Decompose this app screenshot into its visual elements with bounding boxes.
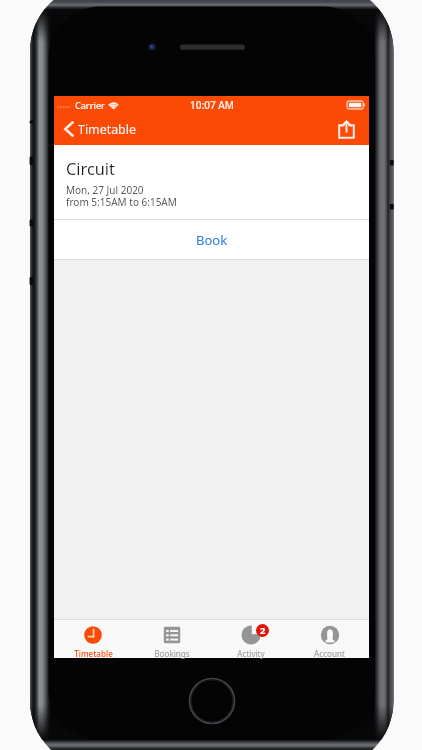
staticText: Account	[314, 648, 345, 659]
staticText: Circuit	[66, 158, 115, 180]
button[interactable]: Share	[330, 114, 362, 144]
staticText: Book	[196, 231, 228, 249]
staticText: Activity	[237, 648, 265, 659]
staticText: Mon, 27 Jul 2020 from 5:15AM to 6:15AM	[66, 183, 177, 209]
button[interactable]: Timetable	[54, 620, 132, 658]
staticText: Carrier	[75, 99, 105, 111]
button[interactable]: Timetable	[58, 115, 144, 143]
button[interactable]: 2	[211, 620, 290, 658]
staticText: 10:07 AM	[190, 98, 234, 112]
button[interactable]: Account	[290, 620, 369, 658]
staticText: Bookings	[154, 648, 190, 659]
staticText: 2	[260, 624, 266, 637]
button[interactable]: Book	[54, 220, 369, 259]
staticText: Timetable	[74, 648, 113, 659]
button[interactable]: Bookings	[132, 620, 211, 658]
staticText: Timetable	[78, 121, 136, 138]
